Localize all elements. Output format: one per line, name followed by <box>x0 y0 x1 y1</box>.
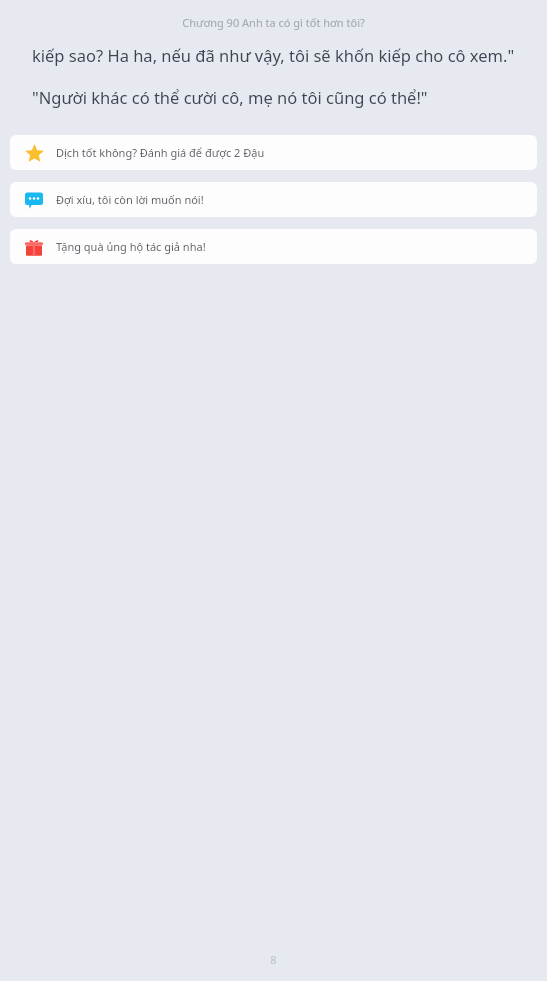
other: Send gift <box>24 237 44 257</box>
staticText: Tặng quà ủng hộ tác giả nha! <box>56 239 206 254</box>
button[interactable]: Rate translation <box>10 135 537 170</box>
staticText: Dịch tốt không? Đánh giá để được 2 Đậu <box>56 145 265 160</box>
staticText: 8 <box>270 952 277 967</box>
button[interactable]: Comment <box>10 182 537 217</box>
other: Comment <box>24 190 44 210</box>
staticText: Đợi xíu, tôi còn lời muốn nói! <box>56 192 204 207</box>
staticText: "Người khác có thể cười cô, mẹ nó tôi cũ… <box>32 86 428 108</box>
staticText: kiếp sao? Ha ha, nếu đã như vậy, tôi sẽ … <box>32 44 515 66</box>
other: Rate translation <box>24 143 44 163</box>
staticText: Chương 90 Anh ta có gì tốt hơn tôi? <box>182 15 365 30</box>
button[interactable]: Send gift <box>10 229 537 264</box>
